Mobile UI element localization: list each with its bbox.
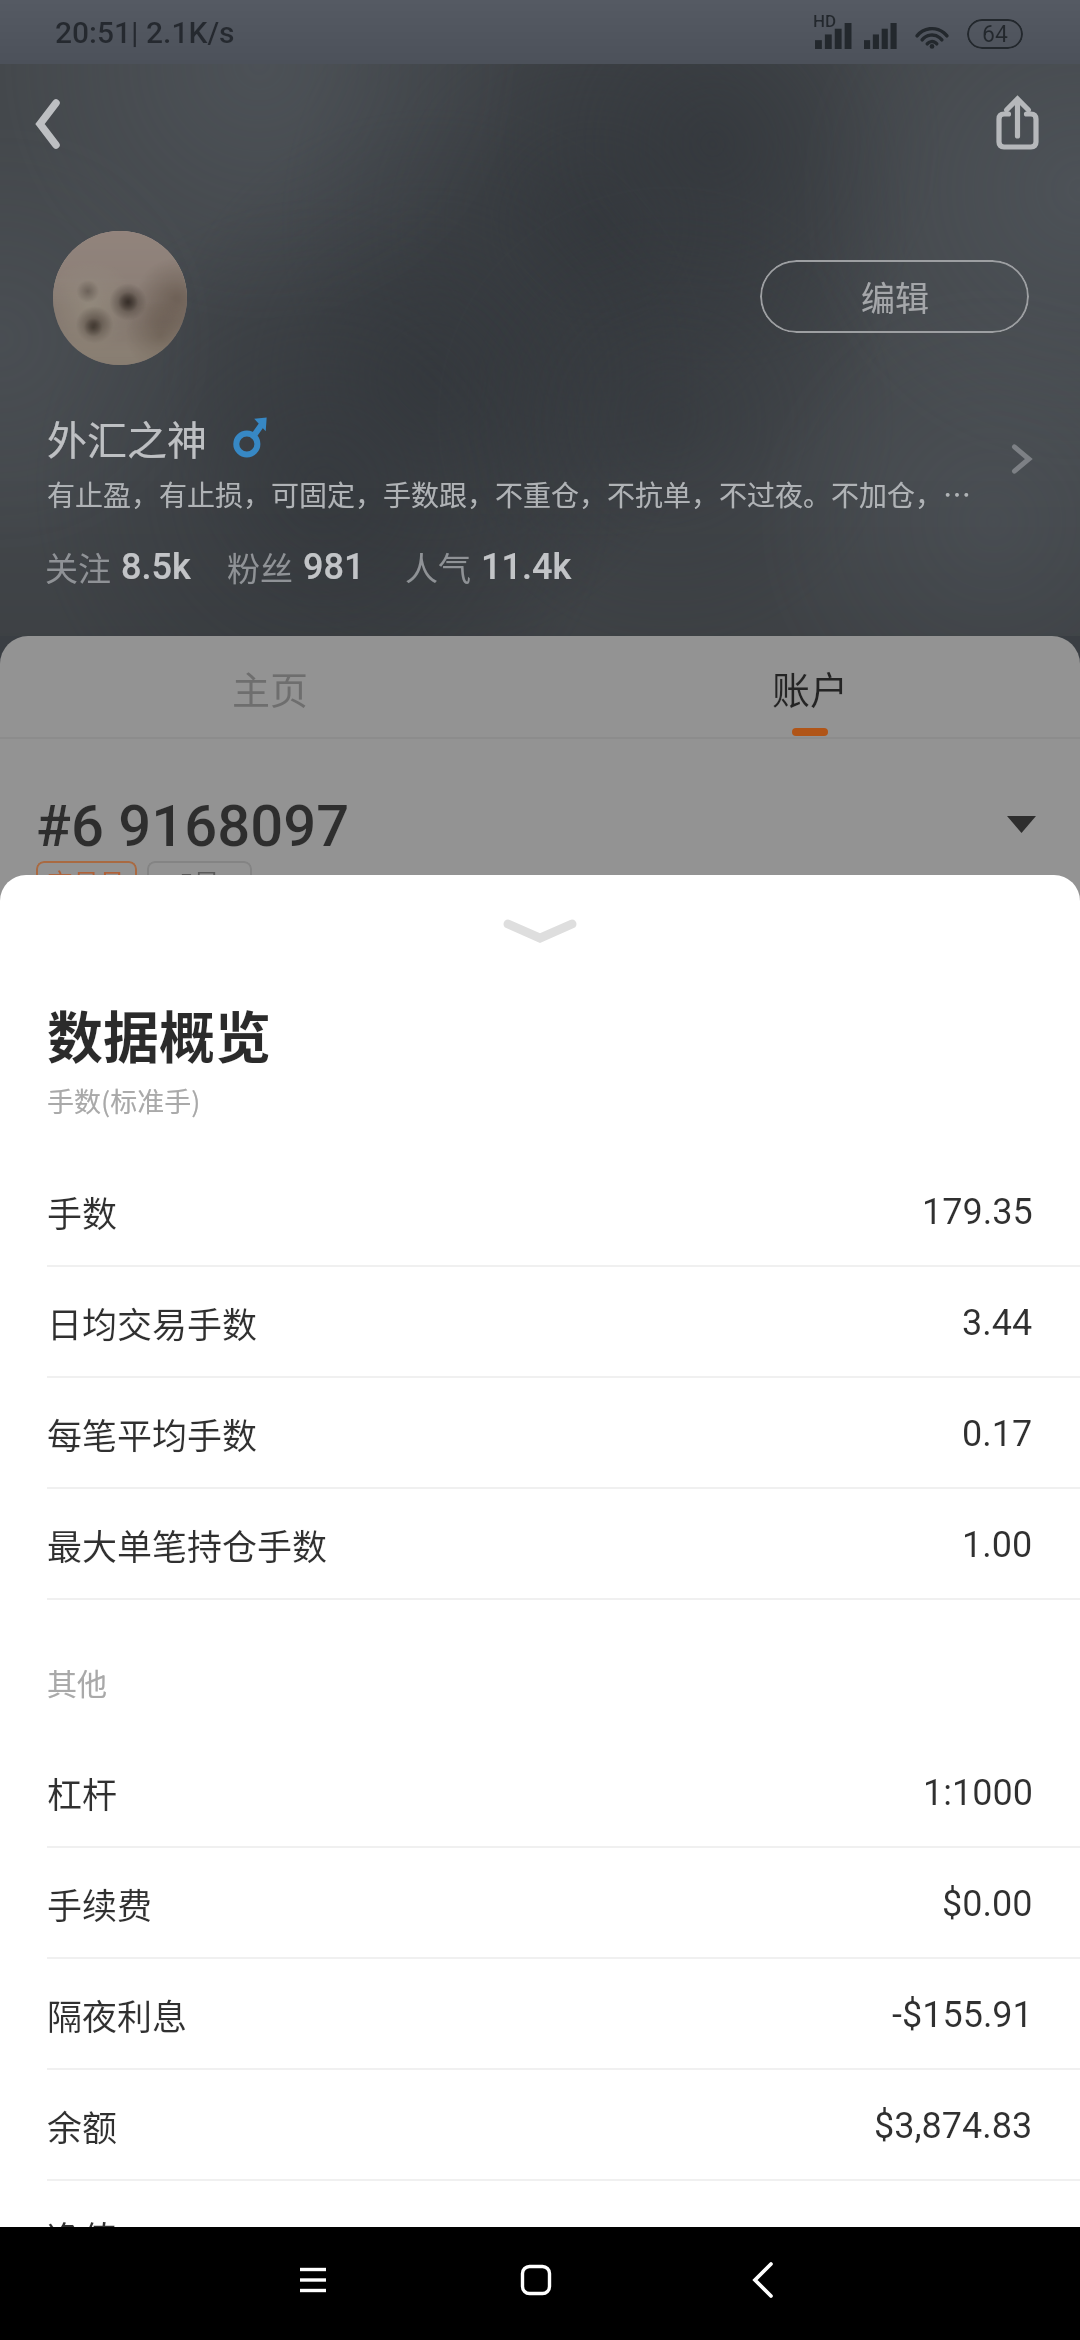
- button[interactable]: Back: [8, 84, 88, 164]
- staticText: 8.5k: [121, 546, 191, 588]
- button[interactable]: Back: [723, 2240, 803, 2320]
- staticText: 日均交易手数: [47, 1297, 258, 1348]
- staticText: 粉丝: [227, 543, 293, 591]
- staticText: 其他: [47, 1660, 107, 1703]
- button[interactable]: Recent apps: [273, 2240, 353, 2320]
- staticText: 手数(标准手): [47, 1081, 201, 1120]
- staticText: $0.00: [942, 1883, 1033, 1925]
- button[interactable]: 隔夜利息: [0, 1959, 1080, 2070]
- staticText: 外汇之神: [47, 409, 207, 463]
- staticText: 有止盈，有止损，可固定，手数跟，不重仓，不抗单，不过夜。不加仓，…: [47, 474, 972, 515]
- button[interactable]: 手续费: [0, 1848, 1080, 1959]
- button[interactable]: Avatar: [53, 231, 187, 365]
- button[interactable]: 余额: [0, 2070, 1080, 2181]
- staticText: 净值: [47, 2211, 118, 2262]
- staticText: 杠杆: [47, 1767, 118, 1818]
- staticText: 0.17: [962, 1413, 1033, 1455]
- staticText: 179.35: [922, 1191, 1033, 1233]
- staticText: -: [1023, 2216, 1033, 2258]
- staticText: 5星: [179, 863, 220, 901]
- staticText: 1:1000: [923, 1772, 1033, 1814]
- staticText: 手数: [47, 1186, 118, 1237]
- staticText: 关注: [45, 543, 111, 591]
- staticText: 981: [303, 546, 365, 588]
- staticText: $3,874.83: [874, 2105, 1033, 2147]
- staticText: 数据概览: [47, 993, 271, 1074]
- staticText: 主页: [232, 660, 309, 715]
- button[interactable]: 净值: [0, 2181, 1080, 2292]
- button[interactable]: Collapse: [470, 896, 610, 966]
- button[interactable]: 最大单笔持仓手数: [0, 1489, 1080, 1600]
- staticText: 20:51| 2.1K/s: [55, 15, 235, 50]
- button[interactable]: 编辑: [760, 260, 1029, 333]
- staticText: 3.44: [962, 1302, 1033, 1344]
- staticText: 交易员: [47, 863, 126, 901]
- staticText: 1.00: [962, 1524, 1033, 1566]
- button[interactable]: 日均交易手数: [0, 1267, 1080, 1378]
- staticText: HD: [813, 11, 837, 31]
- staticText: 隔夜利息: [47, 1989, 188, 2040]
- button[interactable]: 每笔平均手数: [0, 1378, 1080, 1489]
- button[interactable]: 账户: [540, 636, 1080, 738]
- button[interactable]: Share: [987, 86, 1049, 166]
- staticText: 手续费: [47, 1878, 153, 1929]
- button[interactable]: 5星: [147, 861, 252, 903]
- staticText: 11.4k: [481, 546, 572, 588]
- button[interactable]: 杠杆: [0, 1737, 1080, 1848]
- staticText: -$155.91: [892, 1994, 1033, 2036]
- staticText: 编辑: [861, 272, 929, 321]
- staticText: #6 9168097: [36, 792, 350, 860]
- button[interactable]: 交易员: [36, 861, 137, 903]
- button[interactable]: #6 9168097: [0, 760, 1080, 892]
- button[interactable]: 主页: [0, 636, 540, 738]
- button[interactable]: Home: [496, 2240, 576, 2320]
- staticText: 人气: [405, 543, 471, 591]
- staticText: 最大单笔持仓手数: [47, 1519, 328, 1570]
- staticText: 每笔平均手数: [47, 1408, 258, 1459]
- staticText: 64: [982, 21, 1008, 48]
- staticText: 余额: [47, 2100, 118, 2151]
- button[interactable]: 手数: [0, 1156, 1080, 1267]
- staticText: 账户: [772, 660, 849, 715]
